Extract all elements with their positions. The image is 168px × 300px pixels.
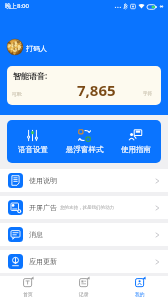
button[interactable]: 使用指南: [110, 120, 161, 163]
staticText: 语音设置: [18, 145, 48, 154]
button[interactable]: 消息: [0, 223, 168, 246]
staticText: 7,865: [77, 80, 116, 100]
button[interactable]: 使用说明: [0, 169, 168, 192]
staticText: 我的: [135, 291, 145, 297]
button[interactable]: 开屏广告: [0, 196, 168, 219]
staticText: 使用说明: [29, 176, 57, 185]
staticText: 使用指南: [121, 145, 151, 154]
staticText: 悬浮窗样式: [66, 145, 104, 154]
staticText: 您的支持，就是我们的动力: [60, 205, 114, 211]
staticText: 智能语音:: [13, 70, 48, 81]
staticText: 打码人: [26, 44, 47, 53]
button[interactable]: 语音设置: [7, 120, 58, 163]
staticText: 字符: [143, 91, 152, 97]
staticText: 首页: [23, 291, 33, 297]
button[interactable]: 应用更新: [0, 250, 168, 273]
staticText: 可用:: [12, 91, 23, 97]
staticText: 开屏广告: [29, 203, 57, 212]
staticText: 晚上8:00: [5, 2, 29, 10]
button[interactable]: 我的: [112, 276, 168, 300]
staticText: 应用更新: [29, 257, 57, 266]
button[interactable]: 悬浮窗样式: [59, 120, 110, 163]
button[interactable]: 首页: [0, 276, 56, 300]
staticText: 消息: [29, 230, 43, 239]
button[interactable]: 记录: [56, 276, 112, 300]
staticText: 记录: [79, 291, 89, 297]
